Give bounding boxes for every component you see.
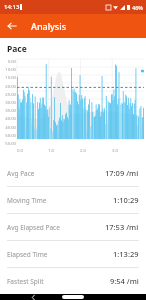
staticText: 25:00 bbox=[5, 92, 16, 98]
staticText: 1.0 bbox=[48, 148, 54, 154]
staticText: 14:13 bbox=[4, 3, 20, 11]
button[interactable]: Elapsed Time bbox=[0, 241, 146, 267]
staticText: Moving Time bbox=[7, 196, 47, 205]
staticText: 1:10:29 bbox=[113, 195, 139, 205]
staticText: 46% bbox=[132, 4, 143, 11]
staticText: Elapsed Time bbox=[7, 250, 48, 259]
staticText: 3.0 bbox=[112, 148, 118, 154]
staticText: 2.0 bbox=[80, 148, 86, 154]
button[interactable]: Moving Time bbox=[0, 187, 146, 213]
button[interactable]: Avg Pace bbox=[0, 160, 146, 186]
staticText: 35:00 bbox=[5, 108, 16, 114]
staticText: 45:00 bbox=[5, 125, 16, 131]
button[interactable]: Home bbox=[62, 295, 84, 299]
staticText: Fastest Split bbox=[7, 277, 44, 286]
button[interactable]: Fastest Split bbox=[0, 268, 146, 294]
staticText: 1:13:29 bbox=[113, 249, 139, 259]
staticText: 17:53 /mi bbox=[105, 222, 139, 232]
staticText: Analysis bbox=[31, 20, 67, 32]
staticText: 15:00 bbox=[5, 75, 16, 81]
staticText: 50:00 bbox=[5, 133, 16, 139]
staticText: 5:00 bbox=[7, 59, 16, 65]
staticText: Avg Elapsed Pace bbox=[7, 223, 60, 232]
staticText: Pace bbox=[7, 43, 27, 55]
staticText: 30:00 bbox=[5, 100, 16, 106]
staticText: 17:09 /mi bbox=[105, 168, 139, 178]
staticText: 9:54 /mi bbox=[110, 276, 139, 286]
staticText: 55:00 bbox=[5, 141, 16, 147]
button[interactable]: Back bbox=[0, 14, 24, 38]
staticText: Avg Pace bbox=[7, 169, 35, 178]
button[interactable]: Avg Elapsed Pace bbox=[0, 214, 146, 240]
staticText: 10:00 bbox=[5, 67, 16, 73]
button[interactable]: Back bbox=[26, 294, 40, 300]
staticText: 0.0 bbox=[17, 148, 23, 154]
staticText: 20:00 bbox=[5, 84, 16, 90]
staticText: 40:00 bbox=[5, 116, 16, 122]
